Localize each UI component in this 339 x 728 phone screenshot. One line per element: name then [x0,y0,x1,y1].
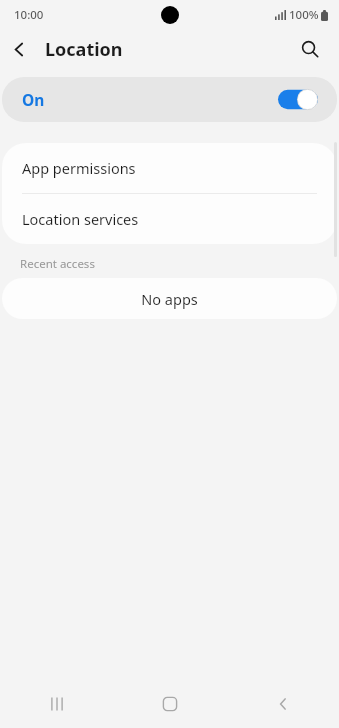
staticText: 10:00 [14,7,44,23]
staticText: Location services [22,209,139,229]
staticText: Location [45,37,123,62]
button[interactable]: No apps [2,278,337,319]
button[interactable]: Home [135,680,205,728]
button[interactable]: Recents [22,680,92,728]
staticText: On [22,89,45,110]
staticText: 100% [289,7,319,23]
staticText: App permissions [22,158,136,178]
button[interactable]: Back [248,680,318,728]
button[interactable]: Search [291,30,329,68]
staticText: Recent access [20,256,95,272]
button[interactable]: App permissions [2,143,337,193]
button[interactable]: Navigate up [0,30,38,68]
button[interactable]: On [2,77,337,122]
button[interactable]: Location services [2,194,337,244]
staticText: No apps [141,289,198,309]
